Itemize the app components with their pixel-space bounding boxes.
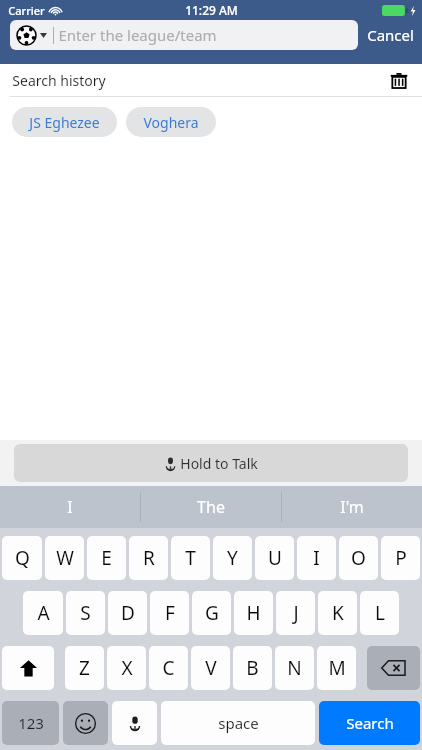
- staticText: I'm: [340, 496, 364, 518]
- staticText: X: [121, 655, 133, 681]
- staticText: O: [351, 545, 366, 571]
- button[interactable]: F: [150, 591, 189, 635]
- button[interactable]: J: [276, 591, 315, 635]
- button[interactable]: N: [275, 646, 314, 690]
- button[interactable]: Voghera: [126, 107, 216, 137]
- staticText: J: [293, 600, 299, 626]
- staticText: B: [246, 655, 259, 681]
- button[interactable]: Y: [213, 536, 252, 580]
- button[interactable]: Cancel: [358, 25, 422, 45]
- staticText: JS Eghezee: [29, 113, 100, 132]
- button[interactable]: Emoji: [63, 701, 108, 745]
- staticText: 123: [18, 713, 44, 733]
- button[interactable]: Enter the league/team: [10, 20, 358, 50]
- button[interactable]: Backspace: [367, 646, 420, 690]
- button[interactable]: G: [192, 591, 231, 635]
- staticText: space: [218, 713, 259, 733]
- button[interactable]: P: [381, 536, 420, 580]
- button[interactable]: S: [66, 591, 105, 635]
- button[interactable]: E: [87, 536, 126, 580]
- staticText: W: [56, 545, 74, 571]
- staticText: K: [332, 600, 344, 626]
- staticText: Y: [227, 545, 238, 571]
- button[interactable]: V: [191, 646, 230, 690]
- button[interactable]: R: [129, 536, 168, 580]
- staticText: R: [143, 545, 155, 571]
- button[interactable]: 123: [2, 701, 59, 745]
- staticText: Search: [346, 713, 394, 733]
- staticText: Search history: [12, 71, 106, 90]
- button[interactable]: D: [108, 591, 147, 635]
- staticText: U: [268, 545, 282, 571]
- staticText: The: [197, 496, 225, 518]
- staticText: L: [375, 600, 385, 626]
- button[interactable]: B: [233, 646, 272, 690]
- staticText: P: [395, 545, 407, 571]
- button[interactable]: Hold to Talk: [14, 444, 408, 482]
- button[interactable]: H: [234, 591, 273, 635]
- staticText: F: [165, 600, 175, 626]
- staticText: E: [101, 545, 112, 571]
- staticText: V: [205, 655, 217, 681]
- staticText: Z: [79, 655, 90, 681]
- button[interactable]: I'm: [282, 486, 422, 528]
- button[interactable]: I: [297, 536, 336, 580]
- button[interactable]: Search: [319, 701, 420, 745]
- button[interactable]: O: [339, 536, 378, 580]
- staticText: I: [313, 545, 320, 571]
- button[interactable]: The: [141, 486, 281, 528]
- staticText: I: [67, 496, 73, 518]
- button[interactable]: space: [161, 701, 315, 745]
- staticText: A: [37, 600, 50, 626]
- staticText: Cancel: [367, 25, 414, 45]
- button[interactable]: A: [23, 591, 63, 635]
- staticText: S: [80, 600, 91, 626]
- staticText: D: [121, 600, 135, 626]
- staticText: T: [185, 545, 196, 571]
- staticText: C: [162, 655, 175, 681]
- staticText: Q: [15, 545, 30, 571]
- staticText: N: [287, 655, 302, 681]
- button[interactable]: Z: [65, 646, 104, 690]
- staticText: Enter the league/team: [58, 25, 217, 45]
- button[interactable]: Shift: [2, 646, 54, 690]
- button[interactable]: C: [149, 646, 188, 690]
- button[interactable]: M: [317, 646, 356, 690]
- staticText: G: [205, 600, 219, 626]
- button[interactable]: Clear search history: [386, 68, 412, 94]
- button[interactable]: K: [318, 591, 357, 635]
- button[interactable]: Q: [2, 536, 42, 580]
- button[interactable]: I: [0, 486, 140, 528]
- button[interactable]: T: [171, 536, 210, 580]
- button[interactable]: X: [107, 646, 146, 690]
- staticText: Carrier: [8, 3, 45, 18]
- staticText: 11:29 AM: [185, 2, 238, 18]
- button[interactable]: Dictation: [112, 701, 157, 745]
- staticText: M: [328, 655, 346, 681]
- button[interactable]: W: [45, 536, 84, 580]
- staticText: Voghera: [143, 113, 199, 132]
- button[interactable]: U: [255, 536, 294, 580]
- button[interactable]: L: [360, 591, 399, 635]
- button[interactable]: JS Eghezee: [12, 107, 117, 137]
- staticText: H: [246, 600, 261, 626]
- staticText: Hold to Talk: [180, 454, 258, 473]
